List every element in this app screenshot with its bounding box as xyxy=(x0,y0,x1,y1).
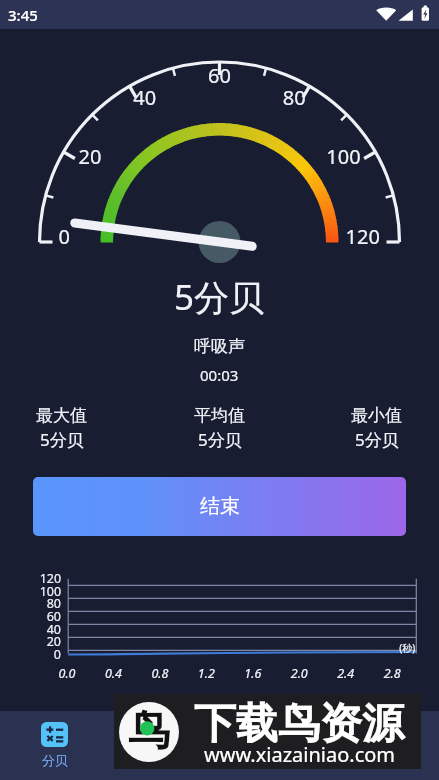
staticText: 平均值 xyxy=(194,405,245,426)
staticText: 鸟 xyxy=(128,705,170,758)
staticText: 我的 xyxy=(371,752,397,768)
staticText: 记录 xyxy=(261,752,287,768)
staticText: 5分贝 xyxy=(174,273,265,321)
staticText: 5分贝 xyxy=(198,428,242,451)
staticText: 5分贝 xyxy=(355,428,399,451)
staticText: 呼吸声 xyxy=(194,336,245,357)
button[interactable]: 噪音 xyxy=(109,711,219,780)
staticText: 00:03 xyxy=(200,365,239,385)
staticText: 5分贝 xyxy=(40,428,84,451)
staticText: 结束 xyxy=(200,494,240,519)
staticText: www.xiazainiao.com xyxy=(204,741,396,768)
button[interactable]: 记录 xyxy=(219,711,329,780)
staticText: 下载鸟资源 xyxy=(194,698,404,751)
button[interactable]: 分贝 xyxy=(0,711,109,780)
staticText: 最小值 xyxy=(351,405,402,426)
staticText: 分贝 xyxy=(42,752,68,768)
button[interactable]: 我的 xyxy=(329,711,439,780)
staticText: 最大值 xyxy=(36,405,87,426)
button[interactable]: 结束 xyxy=(33,477,406,536)
staticText: 3:45 xyxy=(8,5,38,25)
staticText: 噪音 xyxy=(151,752,177,768)
